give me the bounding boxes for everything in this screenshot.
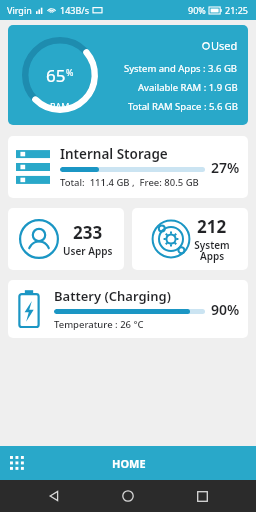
staticText: Internal Storage	[60, 145, 168, 163]
button[interactable]: Storage	[8, 136, 248, 198]
staticText: 212	[197, 215, 227, 238]
staticText: Available RAM : 1.9 GB	[138, 81, 238, 94]
staticText: 233	[73, 221, 103, 244]
staticText: Virgin	[7, 4, 32, 16]
staticText: 21:25	[225, 4, 249, 16]
other: System apps	[151, 219, 191, 259]
button[interactable]: Back	[34, 480, 74, 512]
other: User apps	[19, 219, 59, 259]
staticText: 90%	[188, 4, 206, 16]
staticText: Battery (Charging)	[54, 287, 171, 305]
button[interactable]: Battery	[8, 280, 248, 338]
staticText: Total RAM Space : 5.6 GB	[128, 100, 238, 113]
button[interactable]: System apps	[132, 208, 248, 270]
staticText: System Apps	[194, 238, 230, 263]
button[interactable]: Apps grid	[0, 446, 34, 480]
staticText: 90%	[211, 300, 240, 319]
other: Storage	[16, 150, 50, 184]
button[interactable]: User apps	[8, 208, 124, 270]
button[interactable]: Recents	[182, 480, 222, 512]
button[interactable]: HOME	[58, 446, 199, 480]
staticText: Temperature : 26 °C	[54, 318, 144, 331]
staticText: 27%	[211, 158, 240, 177]
staticText: 65	[46, 64, 66, 87]
staticText: RAM	[50, 100, 70, 112]
button[interactable]: 65	[8, 25, 248, 125]
staticText: HOME	[112, 456, 146, 471]
staticText: %	[66, 66, 74, 78]
staticText: Used	[211, 38, 238, 53]
staticText: Total: 111.4 GB , Free: 80.5 GB	[60, 176, 199, 189]
staticText: System and Apps : 3.6 GB	[124, 62, 238, 75]
button[interactable]: Home	[108, 480, 148, 512]
other: Battery	[16, 289, 42, 329]
staticText: User Apps	[63, 244, 113, 258]
staticText: 143B/s	[60, 4, 89, 16]
